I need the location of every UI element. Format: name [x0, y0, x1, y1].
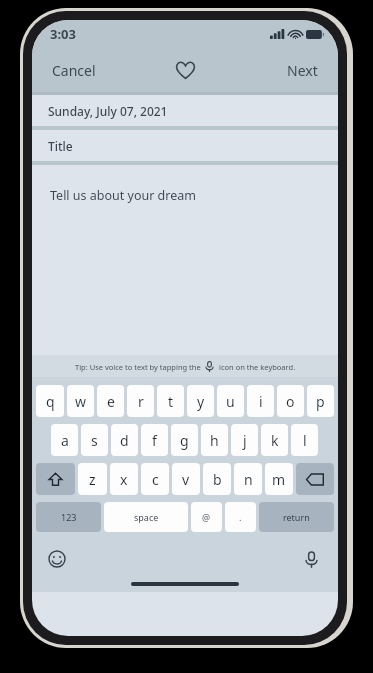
- staticText: icon on the keyboard.: [219, 362, 296, 372]
- staticText: Sunday, July 07, 2021: [48, 103, 168, 119]
- button[interactable]: z: [78, 463, 107, 495]
- staticText: d: [120, 431, 129, 450]
- button[interactable]: u: [217, 385, 244, 417]
- staticText: f: [152, 431, 157, 450]
- button[interactable]: x: [110, 463, 138, 495]
- staticText: Tell us about your dream: [50, 187, 196, 204]
- button[interactable]: Voice input: [299, 547, 324, 572]
- button[interactable]: return: [259, 502, 334, 532]
- staticText: x: [120, 470, 128, 489]
- staticText: c: [152, 470, 159, 489]
- staticText: n: [244, 470, 253, 489]
- button[interactable]: y: [187, 385, 214, 417]
- staticText: Title: [48, 138, 73, 154]
- staticText: y: [197, 392, 205, 411]
- staticText: @: [202, 511, 211, 523]
- staticText: 3:03: [50, 25, 76, 43]
- button[interactable]: space: [104, 502, 188, 532]
- button[interactable]: j: [231, 424, 258, 456]
- button[interactable]: Cancel: [32, 53, 116, 88]
- button[interactable]: Sunday, July 07, 2021: [32, 95, 338, 126]
- staticText: k: [271, 431, 279, 450]
- button[interactable]: q: [36, 385, 64, 417]
- button[interactable]: r: [127, 385, 154, 417]
- button[interactable]: l: [291, 424, 318, 456]
- button[interactable]: e: [97, 385, 124, 417]
- button[interactable]: Emoji: [44, 546, 70, 572]
- staticText: q: [46, 392, 55, 411]
- button[interactable]: v: [172, 463, 200, 495]
- staticText: s: [91, 431, 98, 450]
- button[interactable]: Next: [267, 53, 338, 88]
- staticText: i: [259, 392, 263, 411]
- button[interactable]: s: [81, 424, 108, 456]
- staticText: w: [75, 392, 87, 411]
- button[interactable]: t: [157, 385, 184, 417]
- button[interactable]: Backspace: [296, 463, 334, 495]
- button[interactable]: c: [141, 463, 169, 495]
- staticText: b: [213, 470, 222, 489]
- staticText: return: [283, 511, 310, 523]
- button[interactable]: Favorite: [168, 53, 203, 88]
- button[interactable]: .: [225, 502, 256, 532]
- staticText: 123: [61, 511, 77, 523]
- staticText: z: [89, 470, 96, 489]
- button[interactable]: m: [265, 463, 293, 495]
- staticText: m: [272, 470, 286, 489]
- staticText: p: [316, 392, 325, 411]
- button[interactable]: 123: [36, 502, 101, 532]
- button[interactable]: Shift: [36, 463, 75, 495]
- button[interactable]: Title: [32, 130, 338, 161]
- button[interactable]: h: [201, 424, 228, 456]
- staticText: h: [210, 431, 219, 450]
- button[interactable]: b: [203, 463, 231, 495]
- staticText: g: [180, 431, 189, 450]
- button[interactable]: a: [51, 424, 78, 456]
- button[interactable]: f: [141, 424, 168, 456]
- staticText: a: [61, 431, 69, 450]
- staticText: e: [107, 392, 115, 411]
- staticText: t: [168, 392, 174, 411]
- button[interactable]: i: [247, 385, 274, 417]
- staticText: Cancel: [52, 61, 96, 80]
- button[interactable]: p: [307, 385, 334, 417]
- staticText: v: [182, 470, 190, 489]
- staticText: l: [303, 431, 307, 450]
- button[interactable]: k: [261, 424, 288, 456]
- staticText: u: [226, 392, 235, 411]
- button[interactable]: @: [191, 502, 222, 532]
- staticText: Tip: Use voice to text by tapping the: [75, 362, 201, 372]
- staticText: .: [239, 511, 242, 523]
- button[interactable]: o: [277, 385, 304, 417]
- staticText: o: [286, 392, 295, 411]
- button[interactable]: Tell us about your dream: [32, 165, 338, 355]
- button[interactable]: w: [67, 385, 94, 417]
- button[interactable]: g: [171, 424, 198, 456]
- staticText: r: [138, 392, 144, 411]
- button[interactable]: n: [234, 463, 262, 495]
- staticText: Next: [287, 61, 318, 80]
- button[interactable]: d: [111, 424, 138, 456]
- staticText: j: [243, 431, 247, 450]
- staticText: space: [134, 511, 159, 523]
